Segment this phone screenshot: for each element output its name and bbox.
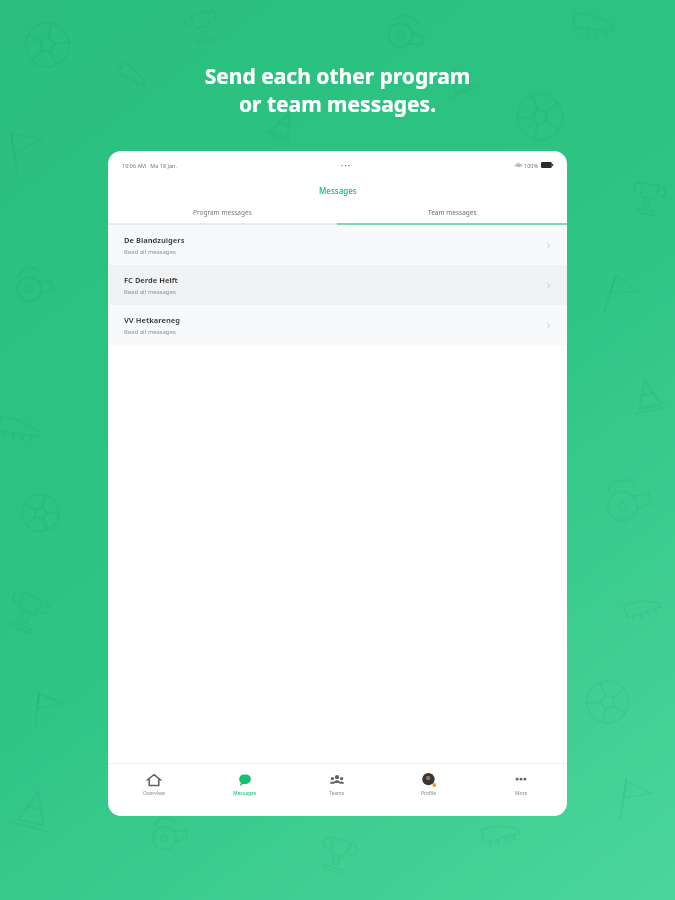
button[interactable]: Profile [383,764,475,806]
button[interactable]: More [475,764,567,806]
staticText: FC Derde Helft [124,275,178,285]
staticText: Program messages [193,208,252,217]
staticText: Send each other program or team messages… [0,62,675,118]
button[interactable]: De Blandzuigers [108,225,567,265]
staticText: Read all messages [124,288,176,296]
button[interactable]: Overview [108,764,199,806]
button[interactable]: Team messages [337,201,567,223]
staticText: Profile [421,790,437,797]
button[interactable]: Teams [291,764,383,806]
staticText: VV Hetkareneg [124,315,181,325]
staticText: De Blandzuigers [124,235,185,245]
staticText: More [515,790,528,797]
staticText: 10:06 AM Ma 18 jan. [122,162,177,169]
staticText: • • • [341,162,351,169]
staticText: Teams [329,790,345,797]
staticText: Overview [143,790,165,797]
staticText: Read all messages [124,248,176,256]
staticText: Read all messages [124,328,176,336]
staticText: 100% [524,162,539,169]
button[interactable]: VV Hetkareneg [108,305,567,345]
staticText: Team messages [428,208,477,217]
button[interactable]: FC Derde Helft [108,265,567,305]
button[interactable]: Program messages [108,201,337,223]
staticText: Messages [319,185,357,196]
button[interactable]: Messages [199,764,291,806]
staticText: Messages [233,790,257,797]
